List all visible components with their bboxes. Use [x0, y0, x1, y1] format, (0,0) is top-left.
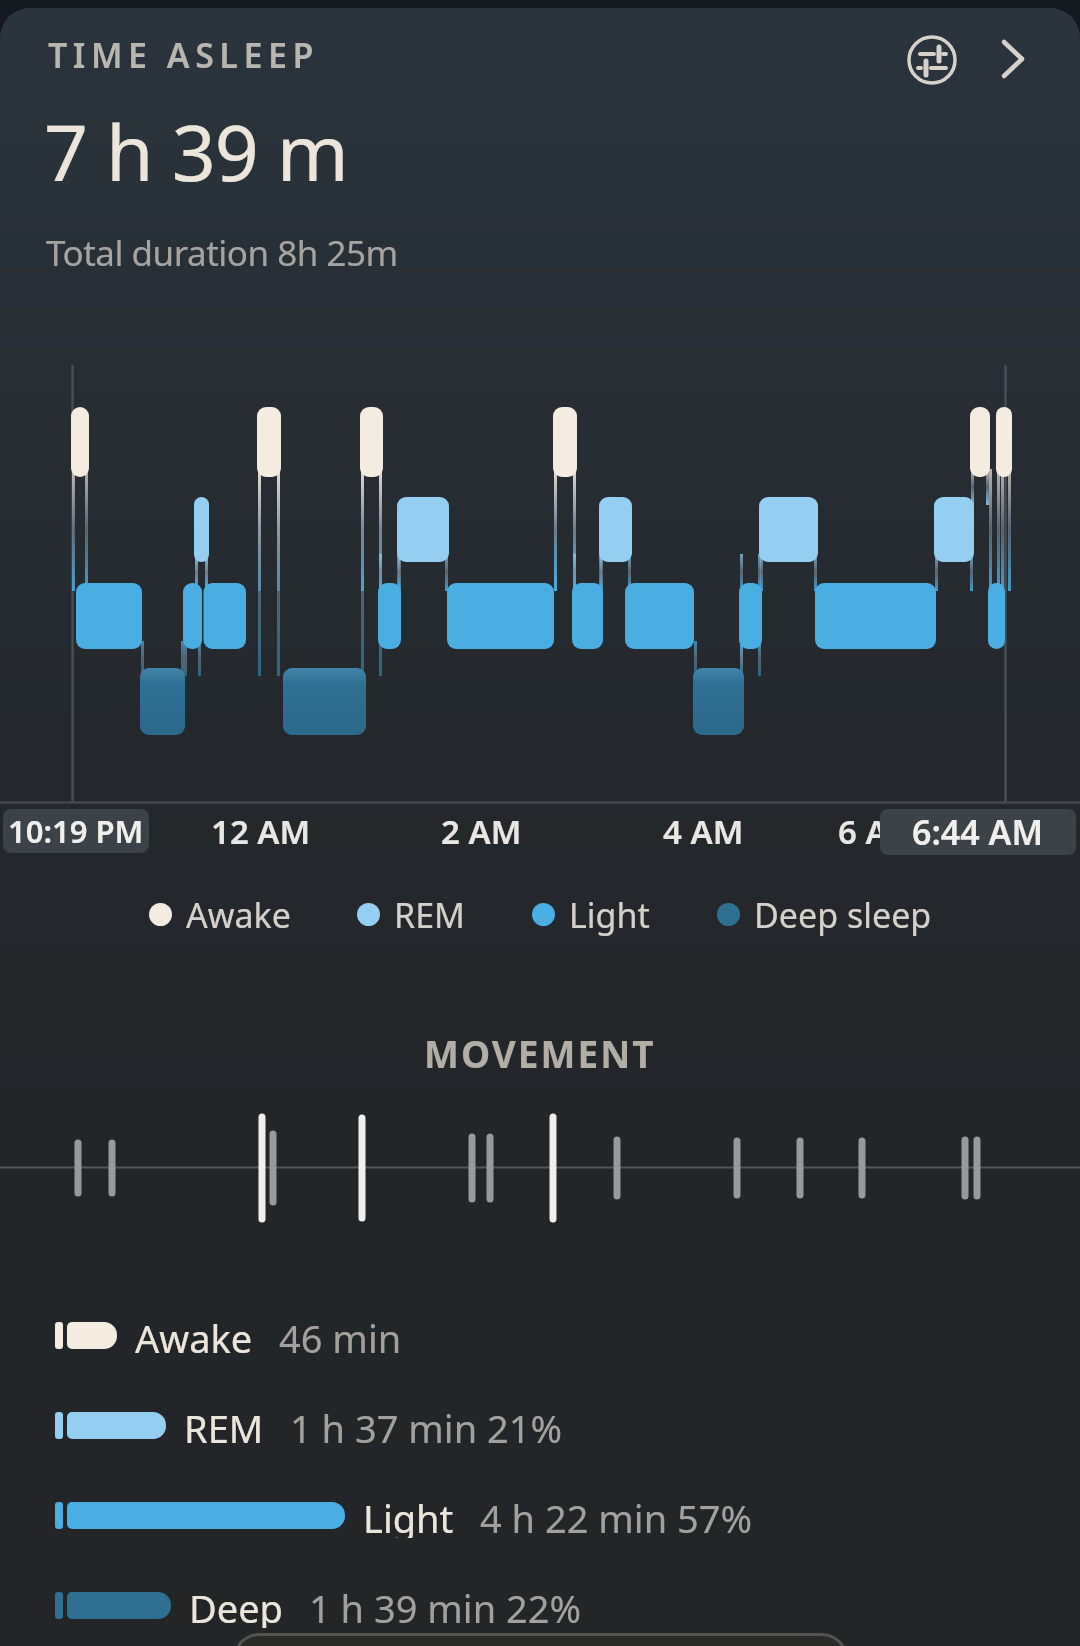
button[interactable]: [903, 31, 961, 89]
staticText: REM: [394, 892, 465, 936]
staticText: 1 h 37 min 21%: [290, 1402, 563, 1448]
staticText: Deep sleep: [754, 892, 932, 936]
staticText: TIME ASLEEP: [48, 32, 319, 78]
staticText: Awake: [186, 892, 291, 936]
button[interactable]: [992, 31, 1036, 89]
staticText: 1 h 39 min 22%: [309, 1582, 582, 1628]
staticText: 4 h 22 min 57%: [480, 1492, 753, 1538]
staticText: 6 AM: [838, 809, 919, 853]
staticText: 12 AM: [211, 809, 311, 853]
staticText: Awake: [135, 1312, 253, 1358]
staticText: MOVEMENT: [424, 1028, 656, 1078]
staticText: 10:19 PM: [8, 810, 144, 852]
staticText: Deep: [189, 1582, 283, 1628]
staticText: 2 AM: [441, 809, 522, 853]
staticText: 7 h 39 m: [44, 99, 348, 204]
staticText: 46 min: [279, 1312, 402, 1358]
staticText: 4 AM: [663, 809, 744, 853]
staticText: Total duration 8h 25m: [46, 229, 398, 277]
staticText: Light: [569, 892, 650, 936]
staticText: 6:44 AM: [912, 809, 1044, 855]
staticText: REM: [184, 1402, 264, 1448]
button[interactable]: [233, 1633, 848, 1646]
staticText: Light: [363, 1492, 454, 1538]
